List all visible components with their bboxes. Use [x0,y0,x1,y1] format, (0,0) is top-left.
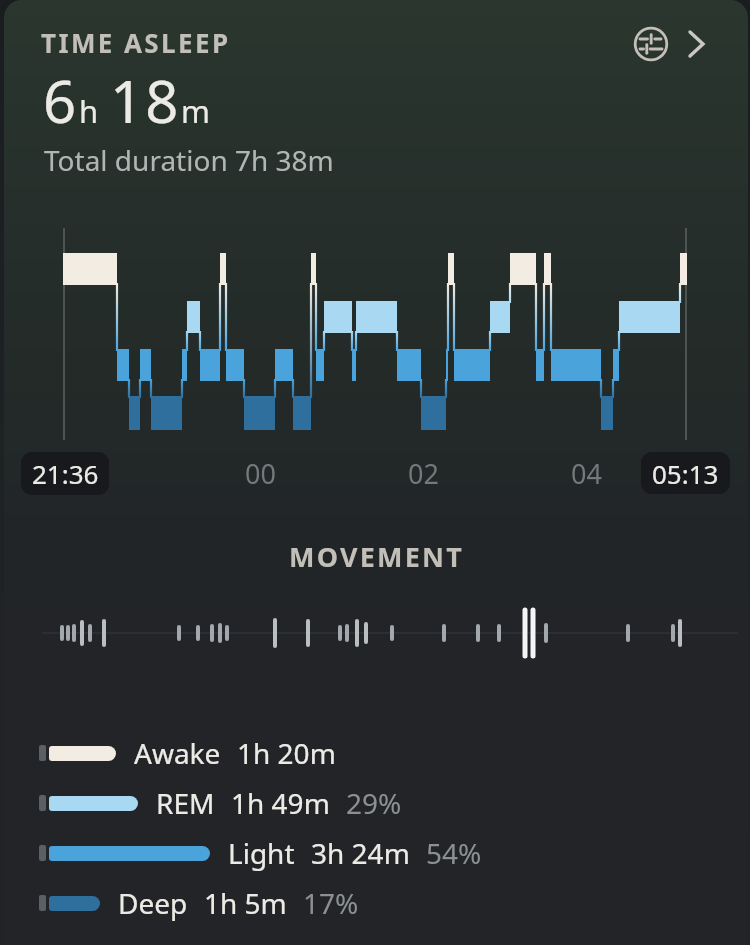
staticText: 29% [346,784,402,822]
button[interactable]: REM [39,778,748,828]
staticText: Awake [134,734,221,772]
staticText: 54% [426,834,482,872]
staticText: 00 [245,455,276,492]
button[interactable] [683,28,711,60]
staticText: 1h 5m [204,884,287,922]
staticText: TIME ASLEEP [41,25,231,60]
staticText: 1h 20m [237,734,336,772]
staticText: 1h 49m [231,784,330,822]
staticText: 17% [303,884,359,922]
staticText: Total duration 7h 38m [44,141,334,179]
staticText: MOVEMENT [289,538,464,572]
staticText: 21:36 [32,456,99,491]
staticText: 18 [110,61,181,140]
staticText: 05:13 [652,456,719,491]
staticText: 3h 24m [311,834,410,872]
button[interactable]: Light [39,828,748,878]
staticText: Light [228,834,295,872]
staticText: 02 [408,455,439,492]
staticText: Deep [118,884,188,922]
staticText: 04 [571,455,602,492]
staticText: 6 [43,61,79,140]
staticText: h [79,90,99,132]
button[interactable]: Awake [39,728,748,778]
button[interactable]: TIME ASLEEP [4,0,748,945]
staticText: m [181,90,210,132]
button[interactable]: Deep [39,878,748,928]
staticText: REM [156,784,215,822]
button[interactable] [632,25,670,63]
